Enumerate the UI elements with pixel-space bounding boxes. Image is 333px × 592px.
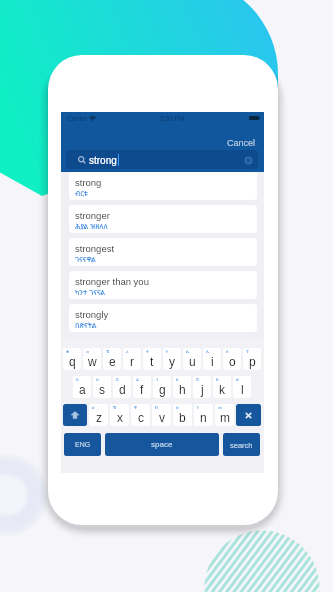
staticText: r bbox=[130, 355, 134, 368]
button[interactable]: ቸ bbox=[131, 404, 150, 426]
staticText: u bbox=[189, 355, 196, 368]
staticText: a bbox=[79, 383, 86, 396]
button[interactable]: search bbox=[223, 433, 260, 456]
staticText: k bbox=[219, 383, 225, 396]
staticText: h bbox=[179, 383, 186, 396]
staticText: strong bbox=[89, 155, 117, 166]
button[interactable]: ደ bbox=[113, 376, 131, 398]
staticText: አ bbox=[76, 377, 79, 382]
button[interactable]: Shift bbox=[63, 404, 87, 426]
staticText: ኧ bbox=[106, 349, 110, 354]
staticText: n bbox=[200, 411, 207, 424]
staticText: e bbox=[109, 355, 116, 368]
staticText: w bbox=[88, 355, 97, 368]
staticText: ረ bbox=[126, 349, 129, 354]
staticText: ሕያል ዝዘለለ bbox=[75, 222, 108, 232]
staticText: p bbox=[249, 355, 256, 368]
staticText: በጽናትል bbox=[75, 321, 97, 331]
button[interactable]: ረ bbox=[123, 348, 141, 370]
staticText: ENG bbox=[75, 441, 91, 449]
staticText: ከ bbox=[216, 377, 219, 382]
staticText: b bbox=[179, 411, 186, 424]
staticText: ጀ bbox=[196, 377, 200, 382]
button[interactable]: ENG bbox=[64, 433, 101, 456]
button[interactable]: ገ bbox=[153, 376, 171, 398]
button[interactable]: ሰ bbox=[93, 376, 111, 398]
staticText: stronger bbox=[75, 210, 110, 221]
button[interactable]: stronger bbox=[69, 205, 257, 233]
button[interactable]: ፈ bbox=[133, 376, 151, 398]
button[interactable]: ለ bbox=[233, 376, 251, 398]
staticText: g bbox=[159, 383, 166, 396]
staticText: strong bbox=[75, 177, 102, 188]
button[interactable]: ኦ bbox=[223, 348, 241, 370]
staticText: ገ bbox=[156, 377, 159, 382]
button[interactable]: strong bbox=[66, 150, 258, 169]
staticText: x bbox=[117, 411, 123, 424]
button[interactable]: Cancel bbox=[219, 136, 264, 150]
button[interactable]: አ bbox=[73, 376, 91, 398]
staticText: ፈ bbox=[136, 377, 140, 382]
staticText: j bbox=[201, 383, 204, 396]
staticText: s bbox=[99, 383, 105, 396]
staticText: ሽ bbox=[113, 405, 117, 410]
button[interactable]: ከ bbox=[213, 376, 231, 398]
staticText: የ bbox=[166, 349, 169, 354]
staticText: stronger than you bbox=[75, 276, 149, 287]
staticText: ኦ bbox=[226, 349, 229, 354]
button[interactable]: ኢ bbox=[203, 348, 221, 370]
button[interactable]: ሀ bbox=[173, 376, 191, 398]
button[interactable]: stronger than you bbox=[69, 271, 257, 299]
staticText: search bbox=[230, 441, 253, 449]
button[interactable]: ሽ bbox=[110, 404, 129, 426]
staticText: ቨ bbox=[155, 405, 158, 410]
staticText: f bbox=[140, 383, 144, 396]
staticText: ቸ bbox=[134, 405, 138, 410]
staticText: strongly bbox=[75, 309, 109, 320]
button[interactable]: የ bbox=[163, 348, 181, 370]
staticText: y bbox=[169, 355, 175, 368]
button[interactable]: ኡ bbox=[183, 348, 201, 370]
staticText: space bbox=[151, 440, 173, 449]
button[interactable]: Backspace bbox=[236, 404, 261, 426]
button[interactable]: strongly bbox=[69, 304, 257, 332]
staticText: ገናናዋል bbox=[75, 255, 96, 265]
button[interactable]: ፐ bbox=[243, 348, 261, 370]
button[interactable]: ኧ bbox=[103, 348, 121, 370]
staticText: ፐ bbox=[246, 349, 250, 354]
button[interactable]: strong bbox=[69, 172, 257, 200]
staticText: o bbox=[229, 355, 236, 368]
staticText: ለ bbox=[236, 377, 239, 382]
button[interactable]: space bbox=[105, 433, 219, 456]
staticText: መ bbox=[218, 405, 223, 410]
button[interactable]: ዘ bbox=[89, 404, 108, 426]
staticText: i bbox=[211, 355, 214, 368]
staticText: Carrier bbox=[67, 115, 87, 122]
staticText: z bbox=[96, 411, 102, 424]
staticText: t bbox=[150, 355, 154, 368]
staticText: 2:50 PM bbox=[160, 115, 185, 122]
button[interactable]: strongest bbox=[69, 238, 257, 266]
button[interactable]: ቀ bbox=[63, 348, 81, 370]
staticText: d bbox=[119, 383, 126, 396]
staticText: ኢ bbox=[206, 349, 210, 354]
staticText: ነ bbox=[197, 405, 199, 410]
staticText: ተ bbox=[146, 349, 150, 354]
staticText: ቀ bbox=[66, 349, 70, 354]
button[interactable]: በ bbox=[173, 404, 192, 426]
staticText: ብርቱ bbox=[75, 189, 88, 199]
button[interactable]: ወ bbox=[83, 348, 101, 370]
button[interactable]: መ bbox=[215, 404, 234, 426]
staticText: በ bbox=[176, 405, 179, 410]
staticText: c bbox=[138, 411, 144, 424]
button[interactable]: ቨ bbox=[152, 404, 171, 426]
staticText: v bbox=[159, 411, 165, 424]
staticText: ሀ bbox=[176, 377, 179, 382]
button[interactable]: ጀ bbox=[193, 376, 211, 398]
staticText: ወ bbox=[86, 349, 90, 354]
button[interactable]: ተ bbox=[143, 348, 161, 370]
staticText: ሰ bbox=[96, 377, 99, 382]
button[interactable]: ነ bbox=[194, 404, 213, 426]
staticText: q bbox=[69, 355, 76, 368]
staticText: ደ bbox=[116, 377, 119, 382]
